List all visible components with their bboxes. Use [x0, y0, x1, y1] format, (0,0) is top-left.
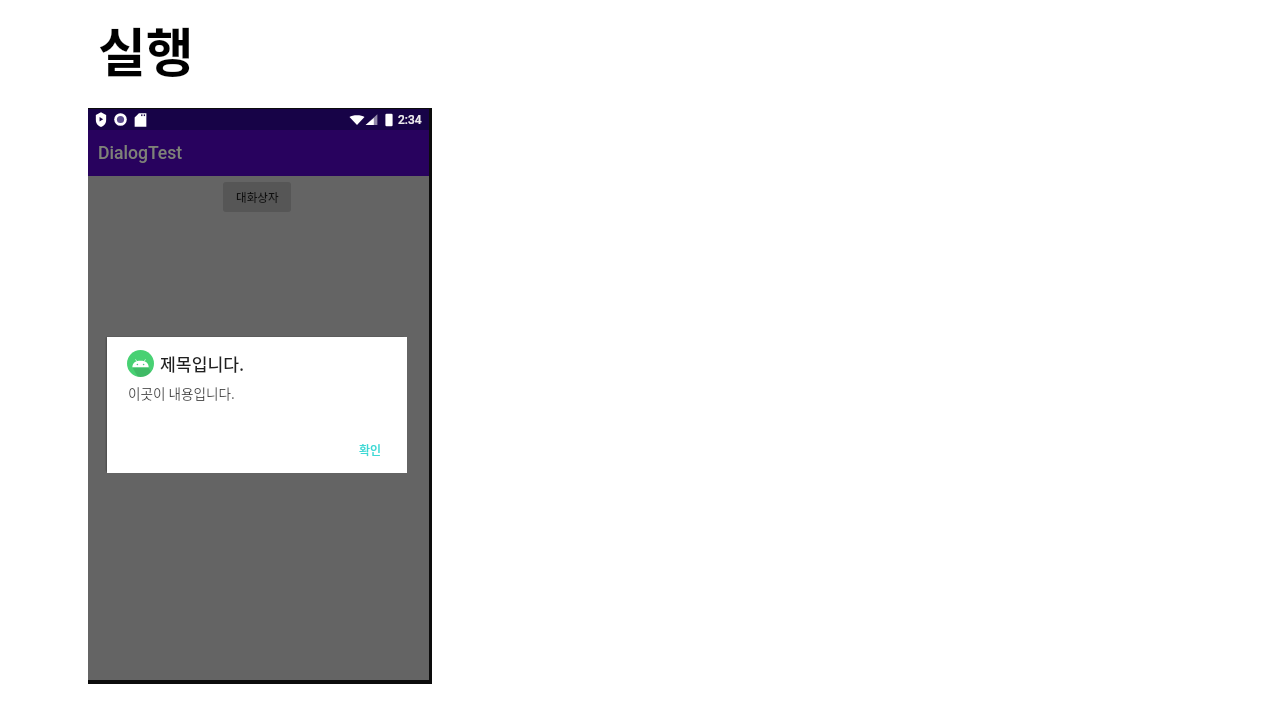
staticText: DialogTest: [98, 143, 183, 164]
button[interactable]: 확인: [353, 437, 388, 462]
staticText: 확인: [359, 441, 382, 458]
staticText: 이곳이 내용입니다.: [128, 383, 235, 403]
other: Battery full: [384, 113, 394, 127]
other: Mobile signal: [365, 113, 378, 126]
other: Screen recording: [113, 112, 128, 127]
button[interactable]: 대화상자: [223, 182, 291, 212]
staticText: 2:34: [398, 113, 422, 127]
other: Wi-Fi: [349, 113, 365, 126]
other: Play Protect: [95, 112, 107, 127]
staticText: 실행: [98, 12, 194, 87]
staticText: 대화상자: [236, 189, 279, 206]
other: App icon: [127, 350, 154, 377]
staticText: 제목입니다.: [160, 351, 245, 376]
other: SD card: [134, 113, 147, 127]
